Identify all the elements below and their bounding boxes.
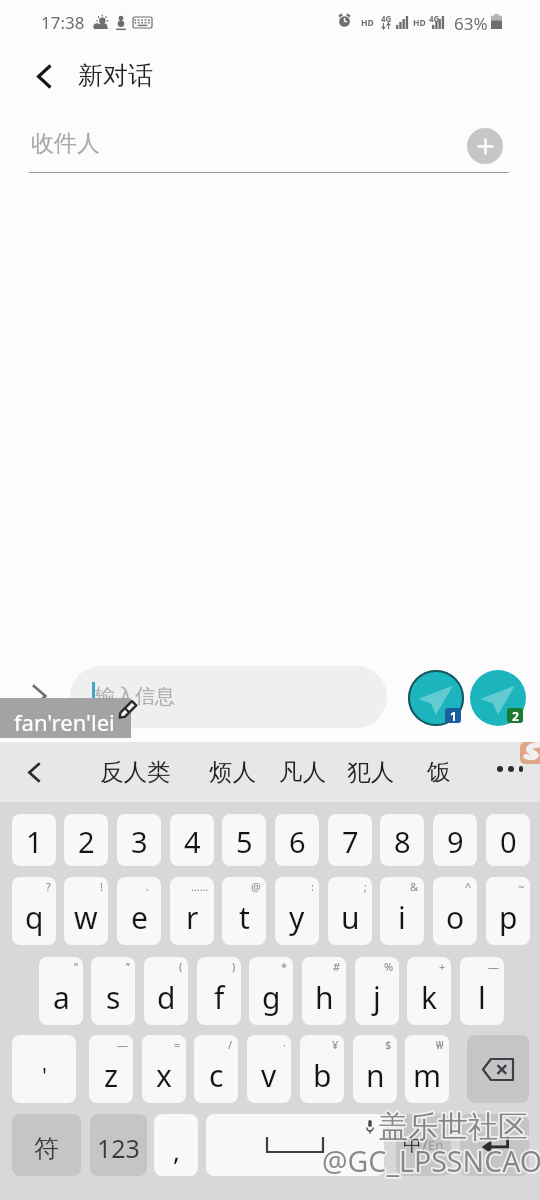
staticText: i [398, 897, 406, 938]
button[interactable]: Switch language [396, 1114, 451, 1176]
staticText: ? [46, 879, 51, 894]
button[interactable]: r [170, 877, 214, 945]
staticText: / [228, 1037, 233, 1052]
staticText: HD [413, 17, 426, 29]
button[interactable]: Expand toolbar [14, 671, 64, 721]
button[interactable]: d [144, 957, 188, 1025]
button[interactable]: 1 [12, 814, 56, 866]
button[interactable]: i [380, 877, 424, 945]
staticText: fan'ren'lei [14, 707, 115, 737]
staticText: 凡人 [279, 757, 326, 787]
button[interactable]: 凡人 [265, 742, 340, 802]
button[interactable]: a [39, 957, 83, 1025]
staticText: ; [364, 879, 367, 894]
staticText: p [499, 897, 518, 938]
button[interactable]: 6 [275, 814, 319, 866]
staticText: 4G [429, 13, 440, 24]
button[interactable]: s [91, 957, 135, 1025]
button[interactable]: k [407, 957, 451, 1025]
staticText: m [413, 1055, 442, 1096]
button[interactable]: b [300, 1035, 344, 1103]
button[interactable]: Back [20, 52, 68, 100]
button[interactable]: 4 [170, 814, 214, 866]
button[interactable]: 2 [64, 814, 108, 866]
button[interactable]: 9 [433, 814, 477, 866]
staticText: n [366, 1055, 385, 1096]
staticText: a [53, 977, 70, 1018]
staticText: ¥ [332, 1037, 339, 1052]
staticText: En [428, 1136, 444, 1154]
button[interactable]: q [12, 877, 56, 945]
button[interactable]: c [194, 1035, 238, 1103]
button[interactable]: Space [206, 1114, 384, 1176]
button[interactable]: x [142, 1035, 186, 1103]
staticText: g [262, 977, 281, 1018]
button[interactable]: 3 [117, 814, 161, 866]
staticText: 3 [131, 822, 148, 861]
button[interactable]: p [486, 877, 530, 945]
button[interactable]: 反人类 [86, 742, 185, 802]
staticText: ~ [518, 879, 525, 894]
button[interactable]: 7 [328, 814, 372, 866]
staticText: 中 [403, 1133, 422, 1157]
staticText: 收件人 [31, 129, 100, 158]
staticText: # [333, 959, 341, 974]
button[interactable]: Send with SIM 2 [470, 670, 526, 726]
staticText: 符 [34, 1133, 59, 1164]
button[interactable]: j [355, 957, 399, 1025]
button[interactable]: o [433, 877, 477, 945]
button[interactable]: 犯人 [333, 742, 408, 802]
button[interactable]: Enter [460, 1114, 529, 1176]
button[interactable]: h [302, 957, 346, 1025]
staticText: 犯人 [347, 757, 394, 787]
staticText: * [281, 959, 288, 974]
button[interactable]: , [154, 1114, 198, 1176]
staticText: 63% [454, 12, 488, 35]
button[interactable]: ' [12, 1035, 76, 1103]
staticText: 饭 [427, 757, 451, 787]
button[interactable]: 5 [222, 814, 266, 866]
button[interactable]: 符 [12, 1114, 81, 1176]
staticText: : [311, 879, 314, 894]
button[interactable]: v [247, 1035, 291, 1103]
button[interactable]: 饭 [413, 742, 465, 802]
staticText: 4G [381, 13, 392, 24]
button[interactable]: Backspace [467, 1035, 529, 1103]
button[interactable]: Send with SIM 1 [408, 670, 464, 726]
staticText: o [446, 897, 465, 938]
staticText: % [384, 959, 394, 974]
button[interactable]: n [353, 1035, 397, 1103]
staticText: 烦人 [209, 757, 256, 787]
staticText: 盖乐世社区 [378, 1108, 528, 1146]
button[interactable]: f [197, 957, 241, 1025]
button[interactable]: e [117, 877, 161, 945]
button[interactable]: More candidates [482, 744, 538, 800]
button[interactable]: t [222, 877, 266, 945]
button[interactable]: l [460, 957, 504, 1025]
staticText: 5 [236, 822, 253, 861]
staticText: j [373, 977, 381, 1018]
button[interactable]: Add recipient [467, 128, 503, 164]
button[interactable]: Hide candidates [7, 745, 62, 800]
staticText: 2 [512, 708, 519, 723]
button[interactable]: z [89, 1035, 133, 1103]
staticText: 反人类 [100, 757, 171, 787]
button[interactable]: 8 [380, 814, 424, 866]
staticText: @GC_LPSSNCAO [322, 1142, 540, 1181]
staticText: s [106, 977, 121, 1018]
button[interactable] [70, 666, 387, 728]
staticText: 输入信息 [95, 684, 175, 709]
staticText: h [315, 977, 334, 1018]
button[interactable]: w [64, 877, 108, 945]
staticText: ₩ [436, 1037, 444, 1052]
button[interactable]: y [275, 877, 319, 945]
staticText: w [74, 897, 98, 938]
staticText: ( [179, 959, 183, 974]
staticText: HD [361, 17, 374, 29]
button[interactable]: 烦人 [195, 742, 270, 802]
button[interactable]: m [405, 1035, 449, 1103]
button[interactable]: g [249, 957, 293, 1025]
button[interactable]: 0 [486, 814, 530, 866]
button[interactable]: 123 [90, 1114, 147, 1176]
button[interactable]: u [328, 877, 372, 945]
